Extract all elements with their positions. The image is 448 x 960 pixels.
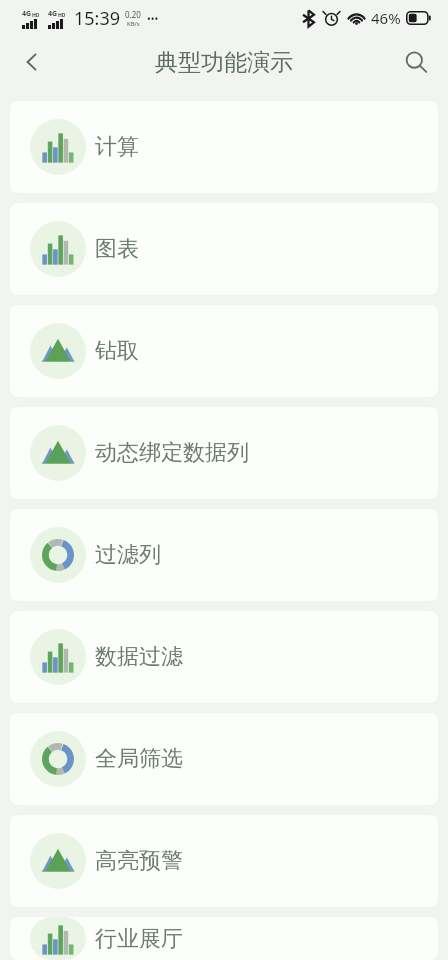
staticText: 数据过滤	[95, 643, 183, 671]
staticText: 动态绑定数据列	[95, 439, 249, 467]
button[interactable]: 行业展厅	[10, 917, 438, 960]
staticText: 全局筛选	[95, 745, 183, 773]
button[interactable]: Search	[394, 40, 438, 84]
staticText: KB/s	[127, 20, 140, 28]
staticText: 钻取	[95, 337, 139, 365]
staticText: 行业展厅	[95, 925, 183, 953]
staticText: 计算	[95, 133, 139, 161]
staticText: HD	[32, 12, 40, 19]
button[interactable]: 数据过滤	[10, 611, 438, 703]
button[interactable]: 过滤列	[10, 509, 438, 601]
staticText: •••	[147, 12, 159, 26]
staticText: 4G	[22, 9, 32, 19]
button[interactable]: Back	[10, 40, 54, 84]
staticText: 高亮预警	[95, 847, 183, 875]
staticText: 46%	[371, 8, 401, 28]
staticText: 过滤列	[95, 541, 161, 569]
button[interactable]: 计算	[10, 101, 438, 193]
button[interactable]: 图表	[10, 203, 438, 295]
staticText: 典型功能演示	[155, 48, 293, 77]
staticText: 4G	[48, 9, 58, 19]
staticText: 图表	[95, 235, 139, 263]
button[interactable]: 动态绑定数据列	[10, 407, 438, 499]
button[interactable]: 全局筛选	[10, 713, 438, 805]
staticText: 0.20	[125, 9, 141, 20]
button[interactable]: 高亮预警	[10, 815, 438, 907]
staticText: 15:39	[74, 6, 121, 31]
button[interactable]: 钻取	[10, 305, 438, 397]
staticText: HD	[58, 12, 66, 19]
